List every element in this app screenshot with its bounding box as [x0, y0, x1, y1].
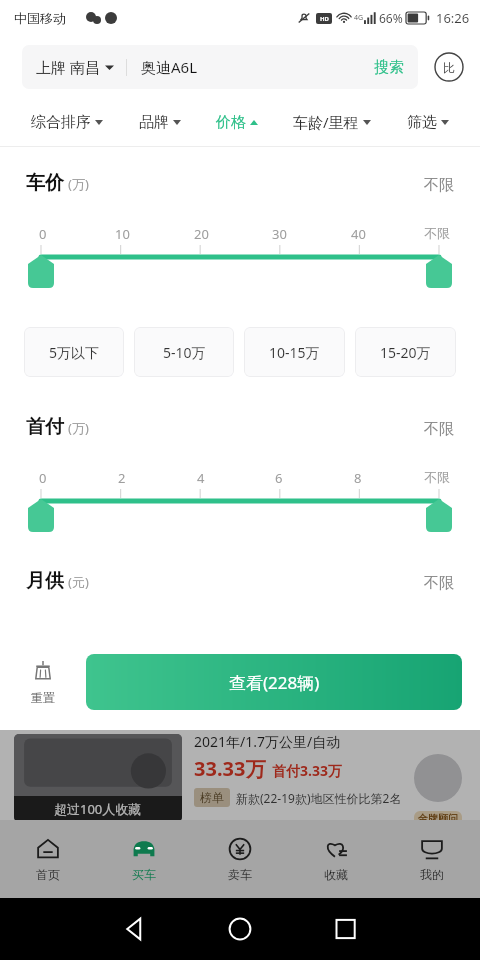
staticText: 搜索 — [374, 58, 404, 77]
button[interactable]: 车龄/里程 — [289, 104, 375, 140]
button[interactable]: 品牌 — [135, 105, 185, 140]
staticText: 车龄/里程 — [293, 112, 359, 132]
staticText: 首付3.33万 — [272, 761, 342, 780]
staticText: 10 — [115, 225, 130, 243]
button[interactable]: 我的 — [384, 820, 480, 898]
staticText: 30 — [272, 225, 287, 243]
button[interactable]: 15-20万 — [355, 327, 456, 377]
staticText: 综合排序 — [31, 113, 91, 132]
staticText: 5万以下 — [49, 343, 100, 362]
staticText: 4G — [354, 13, 364, 23]
staticText: 不限 — [424, 420, 454, 439]
staticText: 卖车 — [228, 867, 252, 882]
staticText: 不限 — [424, 469, 450, 485]
staticText: 品牌 — [139, 113, 169, 132]
staticText: 价格 — [216, 113, 246, 132]
staticText: 买车 — [132, 867, 156, 882]
staticText: (元) — [68, 573, 89, 591]
staticText: 重置 — [31, 690, 55, 705]
button[interactable]: 重置 — [0, 634, 86, 730]
staticText: 不限 — [424, 225, 450, 241]
staticText: 66% — [379, 10, 403, 26]
staticText: 0 — [39, 225, 47, 243]
staticText: 上牌 南昌 — [36, 57, 100, 77]
button[interactable]: 查看(228辆) — [86, 654, 462, 710]
button[interactable]: 5万以下 — [24, 327, 124, 377]
staticText: 5-10万 — [163, 343, 206, 362]
staticText: 超过100人收藏 — [54, 800, 142, 818]
button[interactable]: 10-15万 — [244, 327, 345, 377]
staticText: 0 — [39, 469, 47, 487]
staticText: 2021年/1.7万公里/自动 — [194, 732, 341, 751]
staticText: 金牌顾问 — [418, 812, 458, 825]
staticText: 4 — [197, 469, 205, 487]
staticText: 我的 — [420, 867, 444, 882]
staticText: 15-20万 — [380, 343, 431, 362]
staticText: 比 — [443, 60, 455, 75]
staticText: 中国移动 — [14, 10, 66, 26]
staticText: 8 — [354, 469, 362, 487]
staticText: 首页 — [36, 867, 60, 882]
button[interactable]: 筛选 — [403, 105, 453, 140]
staticText: HD — [320, 15, 329, 23]
staticText: 20 — [194, 225, 209, 243]
button[interactable]: 对比 — [418, 36, 480, 98]
button[interactable]: 综合排序 — [27, 105, 107, 140]
staticText: 首付 — [26, 415, 64, 439]
staticText: (万) — [68, 175, 89, 193]
button[interactable]: 买车 — [96, 820, 192, 898]
staticText: 6 — [275, 469, 283, 487]
staticText: 收藏 — [324, 867, 348, 882]
button[interactable]: 5-10万 — [134, 327, 234, 377]
staticText: 新款(22-19款)地区性价比第2名 — [236, 790, 402, 806]
staticText: 奥迪A6L — [141, 57, 374, 77]
staticText: 33.33万 — [194, 755, 266, 782]
staticText: 2 — [118, 469, 126, 487]
staticText: 10-15万 — [269, 343, 320, 362]
staticText: 16:26 — [436, 9, 470, 27]
staticText: 不限 — [424, 574, 454, 593]
button[interactable]: 卖车 — [192, 820, 288, 898]
staticText: 40 — [351, 225, 366, 243]
staticText: 月供 — [26, 569, 64, 593]
staticText: 车价 — [26, 171, 64, 195]
button[interactable]: 上牌 南昌 — [22, 45, 418, 89]
staticText: 筛选 — [407, 113, 437, 132]
staticText: 榜单 — [200, 790, 224, 805]
button[interactable]: 价格 — [212, 105, 262, 140]
button[interactable]: 收藏 — [288, 820, 384, 898]
staticText: 查看(228辆) — [229, 671, 320, 694]
staticText: (万) — [68, 419, 89, 437]
staticText: 不限 — [424, 176, 454, 195]
button[interactable]: 首页 — [0, 820, 96, 898]
